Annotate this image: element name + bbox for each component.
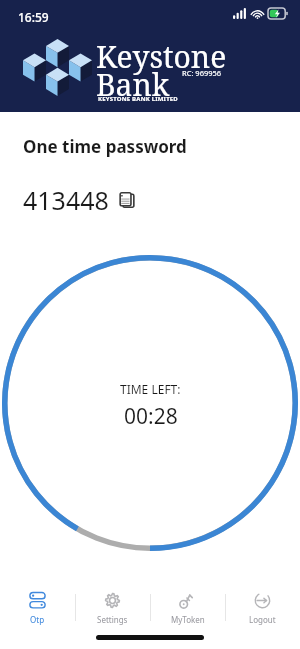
staticText: MyToken	[171, 614, 205, 625]
staticText: RC: 969956	[182, 68, 222, 78]
staticText: 00:28	[124, 402, 178, 431]
staticText: KEYSTONE BANK LIMITED	[98, 95, 178, 103]
button[interactable]: Logout	[225, 583, 300, 632]
button[interactable]: Otp	[0, 583, 75, 632]
staticText: Settings	[97, 614, 128, 625]
staticText: Bank	[96, 64, 170, 105]
button[interactable]: Copy code	[118, 191, 136, 209]
staticText: Keystone	[96, 36, 227, 77]
staticText: Logout	[249, 614, 276, 625]
button[interactable]: Settings	[75, 583, 150, 632]
button[interactable]: MyToken	[150, 583, 225, 632]
staticText: 413448	[23, 183, 109, 217]
staticText: One time password	[23, 135, 187, 158]
staticText: TIME LEFT:	[120, 381, 181, 397]
staticText: 16:59	[18, 9, 49, 25]
staticText: Otp	[30, 614, 45, 625]
